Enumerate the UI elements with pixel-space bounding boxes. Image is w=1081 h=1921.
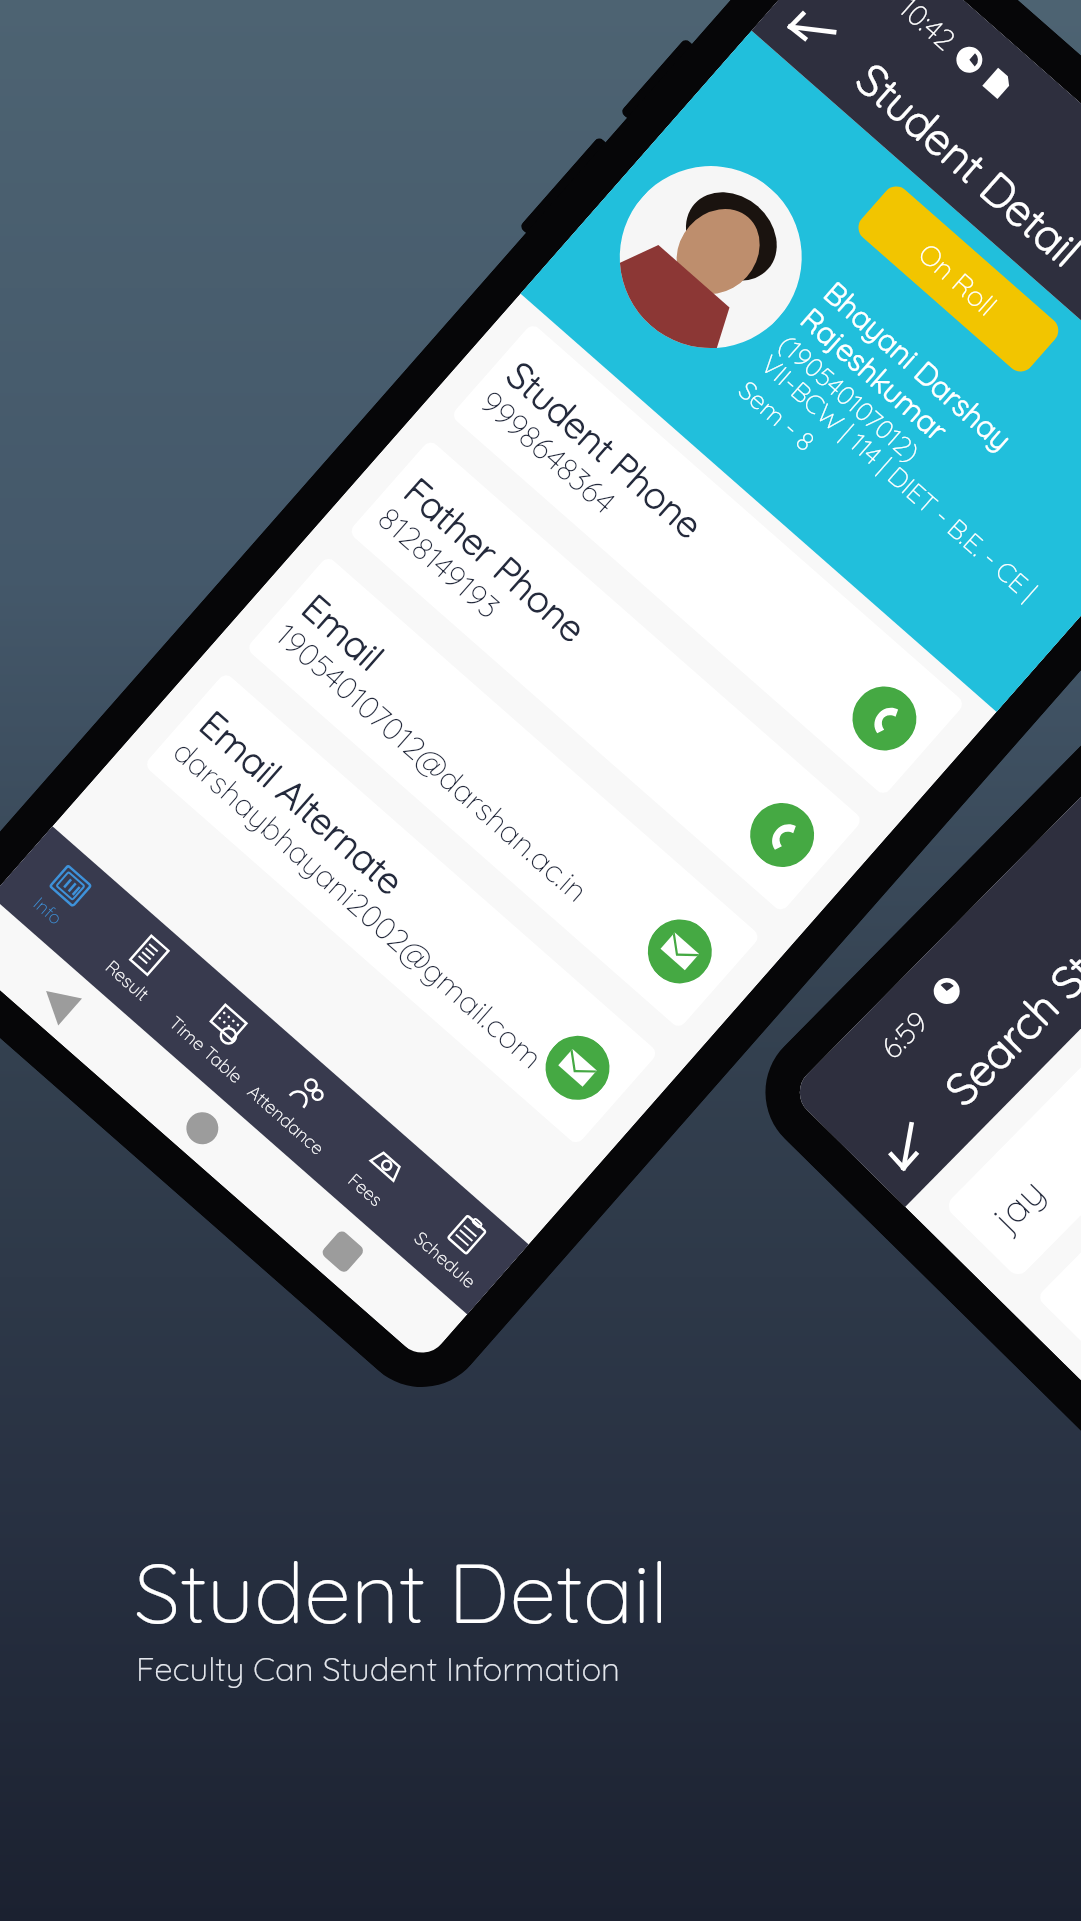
staticText: Father Phone — [396, 467, 596, 651]
staticText: Bhayani Darshay — [816, 273, 1019, 458]
staticText: VII-BCW | 114 | DIET - B.E. - CE | — [754, 348, 1044, 608]
staticText: Info — [29, 892, 67, 930]
button[interactable]: Call — [737, 790, 827, 880]
button[interactable]: Send email — [532, 1023, 623, 1113]
staticText: Feculty Can Student Information — [136, 1648, 620, 1689]
button[interactable]: Father Phone — [348, 439, 863, 913]
button[interactable]: Back — [777, 0, 845, 63]
button[interactable]: Time Table — [149, 965, 290, 1105]
button[interactable]: Attendance — [228, 1035, 369, 1174]
staticText: 190540107012@darshan.ac.in — [268, 615, 597, 910]
button[interactable]: jay — [944, 795, 1081, 1279]
staticText: darshaybhayani2002@gmail.com — [166, 731, 551, 1077]
staticText: Search Student — [933, 862, 1081, 1116]
staticText: 6:59 — [873, 1003, 935, 1066]
staticText: Attendance — [243, 1080, 329, 1160]
button[interactable]: Back — [874, 1114, 941, 1181]
staticText: Sem - 8 — [732, 373, 822, 458]
staticText: (190540107012) — [772, 327, 927, 469]
button[interactable]: Fees — [308, 1105, 449, 1244]
staticText: Email — [293, 584, 394, 680]
staticText: 8128149193 — [370, 498, 509, 627]
button[interactable]: Result — [70, 895, 210, 1035]
staticText: jay — [982, 1168, 1055, 1241]
button[interactable]: Info — [0, 826, 131, 965]
staticText: Student Phone — [498, 351, 713, 548]
staticText: Email Alternate — [191, 700, 414, 904]
button[interactable]: Student Phone — [450, 322, 966, 796]
button[interactable]: On Roll — [853, 181, 1064, 377]
button[interactable]: Email Alternate — [143, 672, 659, 1146]
staticText: Student Detail — [846, 51, 1081, 277]
staticText: Rajeshkumar — [793, 300, 956, 449]
staticText: Schedule — [410, 1226, 481, 1293]
button[interactable]: Send email — [635, 906, 725, 996]
staticText: Student Detail — [134, 1539, 669, 1644]
button[interactable]: Schedule — [388, 1175, 529, 1314]
staticText: On Roll — [912, 235, 1005, 323]
staticText: Fees — [343, 1168, 388, 1211]
staticText: 10:42 — [892, 0, 963, 57]
staticText: 9998648364 — [473, 382, 624, 522]
staticText: Time Table — [165, 1011, 247, 1088]
button[interactable]: Call — [839, 673, 930, 764]
button[interactable]: Email — [246, 555, 761, 1029]
staticText: Result — [101, 955, 154, 1006]
